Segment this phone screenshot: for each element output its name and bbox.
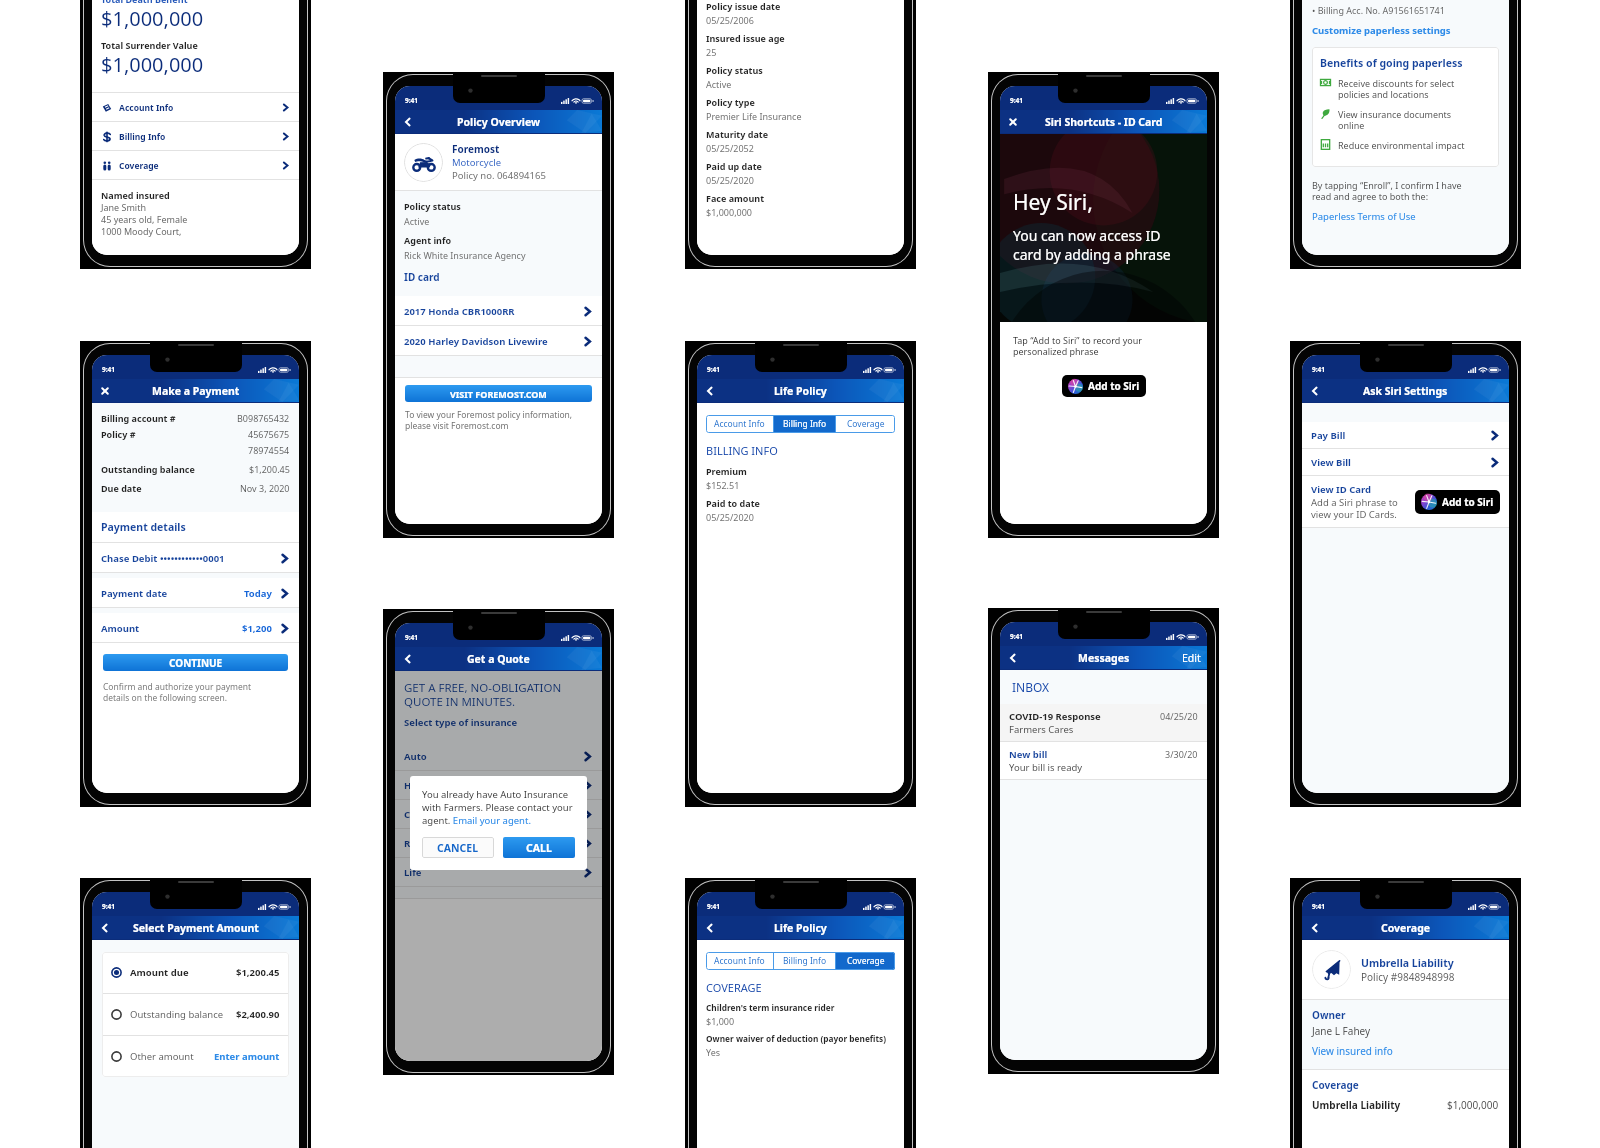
staticText: Auto <box>404 750 582 763</box>
staticText: 9:41 <box>102 365 115 374</box>
staticText: Owner waiver of deduction (payor benefit… <box>706 1033 887 1044</box>
button[interactable]: Amount due <box>102 952 289 993</box>
button[interactable]: Other amount <box>102 1036 289 1077</box>
staticText: Policy # <box>101 428 248 440</box>
staticText: 3/30/20 <box>1165 748 1198 760</box>
staticText: Coverage <box>847 418 885 430</box>
staticText: Face amount <box>706 192 765 204</box>
button[interactable]: Back <box>95 918 115 938</box>
staticText: 78974554 <box>248 444 290 456</box>
staticText: You already have Auto Insurance with Far… <box>422 788 575 827</box>
staticText: 2017 Honda CBR1000RR <box>404 305 582 318</box>
button[interactable]: Account Info <box>706 415 773 433</box>
staticText: Coverage <box>119 160 281 172</box>
button[interactable]: Back <box>398 112 418 132</box>
staticText: Hey Siri, <box>1013 188 1093 217</box>
staticText: $152.51 <box>706 479 740 491</box>
button[interactable]: Back <box>700 918 720 938</box>
staticText: Payment details <box>101 520 186 534</box>
button[interactable]: New bill <box>1000 742 1207 780</box>
button[interactable]: Home <box>395 771 602 800</box>
staticText: 9:41 <box>405 96 418 105</box>
staticText: 25 <box>706 46 717 58</box>
staticText: $1,000,000 <box>101 51 204 78</box>
staticText: New bill <box>1009 748 1048 761</box>
staticText: 9:41 <box>405 633 418 642</box>
button[interactable]: Outstanding balance <box>102 994 289 1035</box>
staticText: Add a Siri phrase to view your ID Cards. <box>1311 496 1398 521</box>
button[interactable]: 2017 Honda CBR1000RR <box>395 296 602 326</box>
staticText: Select type of insurance <box>404 716 518 729</box>
staticText: Receive discounts for select policies an… <box>1338 77 1455 101</box>
staticText: Total Surrender Value <box>101 39 198 51</box>
staticText: Reduce environmental impact <box>1338 139 1465 151</box>
button[interactable]: Back <box>1305 381 1325 401</box>
staticText: 45675675 <box>248 428 290 440</box>
button[interactable]: Commercial <box>395 800 602 829</box>
button[interactable]: CANCEL <box>422 837 494 858</box>
staticText: Farmers Cares <box>1009 723 1074 736</box>
staticText: 9:41 <box>102 902 115 911</box>
button[interactable]: Payment date <box>92 578 299 608</box>
button[interactable]: 2020 Harley Davidson Livewire <box>395 326 602 356</box>
button[interactable]: Back <box>1003 648 1023 668</box>
button[interactable]: COVID-19 Response <box>1000 704 1207 742</box>
button[interactable]: Back <box>700 381 720 401</box>
staticText: 05/25/2006 <box>706 14 754 26</box>
staticText: Motorcycle <box>452 156 502 169</box>
staticText: Coverage <box>847 955 885 967</box>
button[interactable]: Add to Siri <box>1415 490 1500 514</box>
button[interactable]: Billing Info <box>774 415 835 433</box>
staticText: Confirm and authorize your payment detai… <box>103 681 252 703</box>
staticText: 9:41 <box>1312 902 1325 911</box>
button[interactable]: Customize paperless settings <box>1312 24 1451 37</box>
staticText: Umbrella Liability <box>1312 1098 1447 1112</box>
button[interactable]: Renters <box>395 829 602 858</box>
button[interactable]: View insured info <box>1312 1044 1393 1058</box>
button[interactable]: View Bill <box>1302 449 1509 476</box>
button[interactable]: Back <box>1305 918 1325 938</box>
button[interactable]: VISIT FOREMOST.COM <box>405 385 592 402</box>
button[interactable]: Auto <box>395 742 602 771</box>
button[interactable]: Edit <box>1182 651 1201 665</box>
staticText: $1,000,000 <box>101 5 204 32</box>
staticText: INBOX <box>1012 679 1050 695</box>
staticText: $1,000 <box>706 1015 735 1027</box>
staticText: Due date <box>101 482 240 494</box>
staticText: 9:41 <box>1010 632 1023 641</box>
staticText: Account Info <box>119 102 281 114</box>
button[interactable]: Chase Debit ••••••••••••0001 <box>92 543 299 573</box>
staticText: Add to Siri <box>1442 495 1494 509</box>
staticText: Chase Debit ••••••••••••0001 <box>101 552 279 565</box>
staticText: Policy status <box>404 200 461 212</box>
staticText: COVID-19 Response <box>1009 710 1101 723</box>
button[interactable]: Add to Siri <box>1062 375 1146 397</box>
button[interactable]: Close <box>95 381 115 401</box>
button[interactable]: Close <box>1003 112 1023 132</box>
button[interactable]: Billing Info <box>92 122 299 151</box>
staticText: 9:41 <box>1010 96 1023 105</box>
button[interactable]: Coverage <box>92 151 299 180</box>
button[interactable]: Pay Bill <box>1302 422 1509 449</box>
button[interactable]: Account Info <box>706 952 773 970</box>
staticText: Edit <box>1182 651 1201 665</box>
button[interactable]: Billing Info <box>774 952 835 970</box>
button[interactable]: Amount <box>92 613 299 643</box>
staticText: 05/25/2020 <box>706 174 754 186</box>
staticText: View Bill <box>1311 456 1489 469</box>
button[interactable]: Account Info <box>92 93 299 122</box>
staticText: Umbrella Liability <box>1361 956 1454 970</box>
button[interactable]: Paperless Terms of Use <box>1312 210 1416 223</box>
button[interactable]: Back <box>398 649 418 669</box>
button[interactable]: CONTINUE <box>103 654 288 671</box>
staticText: CALL <box>526 841 552 855</box>
staticText: By tapping “Enroll”, I confirm I have re… <box>1312 179 1462 203</box>
staticText: Policy #9848948998 <box>1361 970 1455 984</box>
button[interactable]: Coverage <box>836 952 895 970</box>
staticText: Paid up date <box>706 160 762 172</box>
button[interactable]: Life <box>395 858 602 887</box>
button[interactable]: CALL <box>503 837 575 858</box>
staticText: Benefits of going paperless <box>1320 56 1463 70</box>
button[interactable]: Coverage <box>836 415 895 433</box>
